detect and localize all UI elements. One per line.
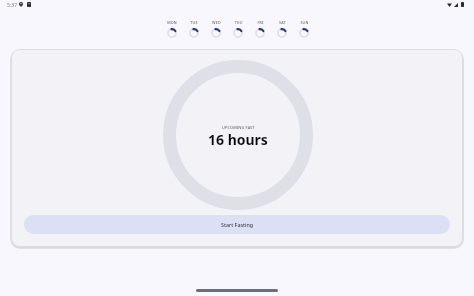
- button[interactable]: MON fasting progress: [161, 20, 183, 38]
- staticText: FRI: [257, 20, 264, 25]
- button[interactable]: THU fasting progress: [227, 20, 249, 38]
- button[interactable]: TUE fasting progress: [183, 20, 205, 38]
- staticText: 16 hours: [208, 130, 268, 149]
- staticText: UPCOMING FAST: [222, 125, 255, 130]
- button[interactable]: FRI fasting progress: [249, 20, 271, 38]
- staticText: SAT: [279, 20, 286, 25]
- button[interactable]: SAT fasting progress: [271, 20, 293, 38]
- button[interactable]: WED fasting progress: [205, 20, 227, 38]
- staticText: 5:37: [7, 1, 18, 8]
- staticText: TUE: [190, 20, 198, 25]
- button[interactable]: SUN fasting progress: [293, 20, 315, 38]
- button[interactable]: Start Fasting: [24, 215, 450, 234]
- staticText: THU: [234, 20, 243, 25]
- staticText: SUN: [300, 20, 309, 25]
- staticText: Start Fasting: [221, 221, 254, 228]
- staticText: MON: [167, 20, 177, 25]
- staticText: WED: [212, 20, 221, 25]
